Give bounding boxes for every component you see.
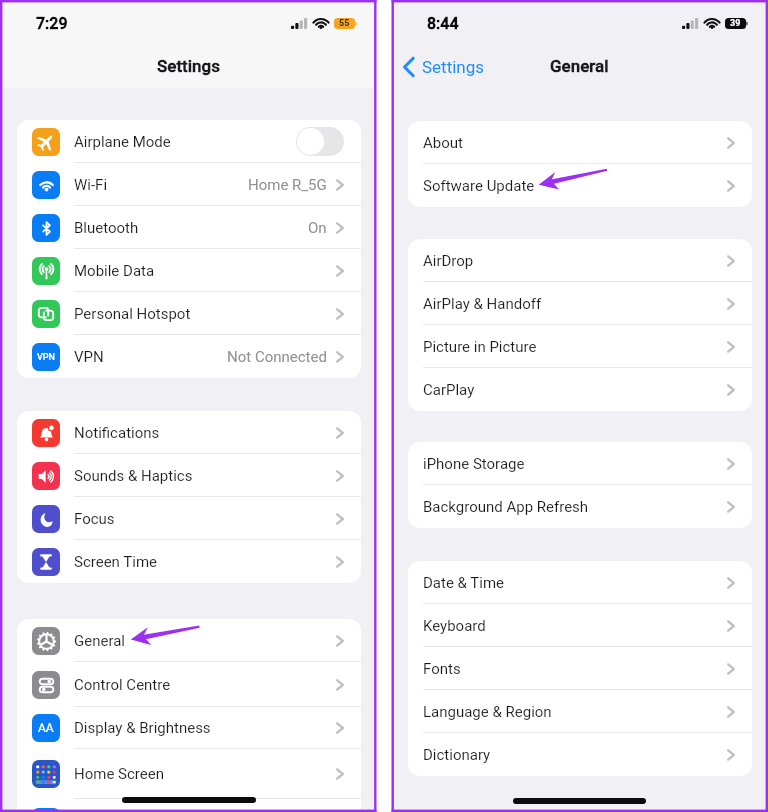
staticText: General [74, 632, 126, 650]
staticText: 8:44 [427, 14, 459, 33]
staticText: Software Update [423, 177, 535, 195]
staticText: Not Connected [227, 348, 327, 366]
staticText: Display & Brightness [74, 719, 211, 737]
staticText: Dictionary [423, 746, 491, 764]
staticText: 7:29 [36, 14, 68, 33]
staticText: iPhone Storage [423, 455, 525, 473]
staticText: 39 [730, 18, 741, 29]
staticText: Picture in Picture [423, 338, 537, 356]
staticText: Bluetooth [74, 219, 139, 237]
staticText: Background App Refresh [423, 498, 589, 516]
staticText: Language & Region [423, 703, 552, 721]
button[interactable]: Focus [17, 497, 361, 540]
button[interactable]: Language & Region [408, 690, 752, 733]
button[interactable]: CarPlay [408, 368, 752, 411]
staticText: Home R_5G [248, 176, 327, 194]
staticText: VPN [74, 348, 104, 366]
button[interactable]: Airplane Mode [17, 120, 361, 163]
staticText: Personal Hotspot [74, 305, 191, 323]
button[interactable]: Control Centre [17, 662, 361, 707]
staticText: AirDrop [423, 252, 474, 270]
staticText: AirPlay & Handoff [423, 295, 542, 313]
button[interactable]: Wi-Fi [17, 163, 361, 206]
staticText: AA [38, 721, 54, 735]
staticText: About [423, 134, 463, 152]
staticText: Home Screen [74, 765, 164, 783]
staticText: Focus [74, 510, 115, 528]
staticText: Mobile Data [74, 262, 155, 280]
staticText: Keyboard [423, 617, 486, 635]
button[interactable]: About [408, 121, 752, 164]
button[interactable]: Settings [393, 48, 493, 83]
button[interactable]: Date & Time [408, 561, 752, 604]
button[interactable]: Keyboard [408, 604, 752, 647]
staticText: Screen Time [74, 553, 158, 571]
button[interactable]: Accessibility [17, 799, 361, 810]
button[interactable]: AA [17, 707, 361, 749]
staticText: Date & Time [423, 574, 505, 592]
staticText: Control Centre [74, 676, 171, 694]
staticText: CarPlay [423, 381, 475, 399]
button[interactable]: Bluetooth [17, 206, 361, 249]
button[interactable]: Mobile Data [17, 249, 361, 292]
button[interactable]: Personal Hotspot [17, 292, 361, 335]
staticText: On [308, 219, 327, 237]
button[interactable]: General [17, 619, 361, 662]
button[interactable]: Toggle Airplane Mode [296, 127, 344, 156]
button[interactable]: Picture in Picture [408, 325, 752, 368]
staticText: VPN [37, 352, 55, 363]
button[interactable]: Sounds & Haptics [17, 454, 361, 497]
staticText: General [550, 56, 609, 76]
button[interactable]: Notifications [17, 411, 361, 454]
staticText: Sounds & Haptics [74, 467, 193, 485]
button[interactable]: AirPlay & Handoff [408, 282, 752, 325]
staticText: Settings [157, 56, 220, 76]
staticText: Fonts [423, 660, 461, 678]
button[interactable]: Screen Time [17, 540, 361, 583]
staticText: Notifications [74, 424, 160, 442]
button[interactable]: VPN [17, 335, 361, 378]
staticText: Wi-Fi [74, 176, 108, 194]
button[interactable]: AirDrop [408, 239, 752, 282]
button[interactable]: iPhone Storage [408, 442, 752, 485]
button[interactable]: Software Update [408, 164, 752, 207]
button[interactable]: Fonts [408, 647, 752, 690]
button[interactable]: Home Screen [17, 749, 361, 799]
staticText: Airplane Mode [74, 133, 171, 151]
staticText: 55 [339, 18, 350, 29]
button[interactable]: Dictionary [408, 733, 752, 776]
staticText: Settings [422, 57, 485, 77]
button[interactable]: Background App Refresh [408, 485, 752, 528]
